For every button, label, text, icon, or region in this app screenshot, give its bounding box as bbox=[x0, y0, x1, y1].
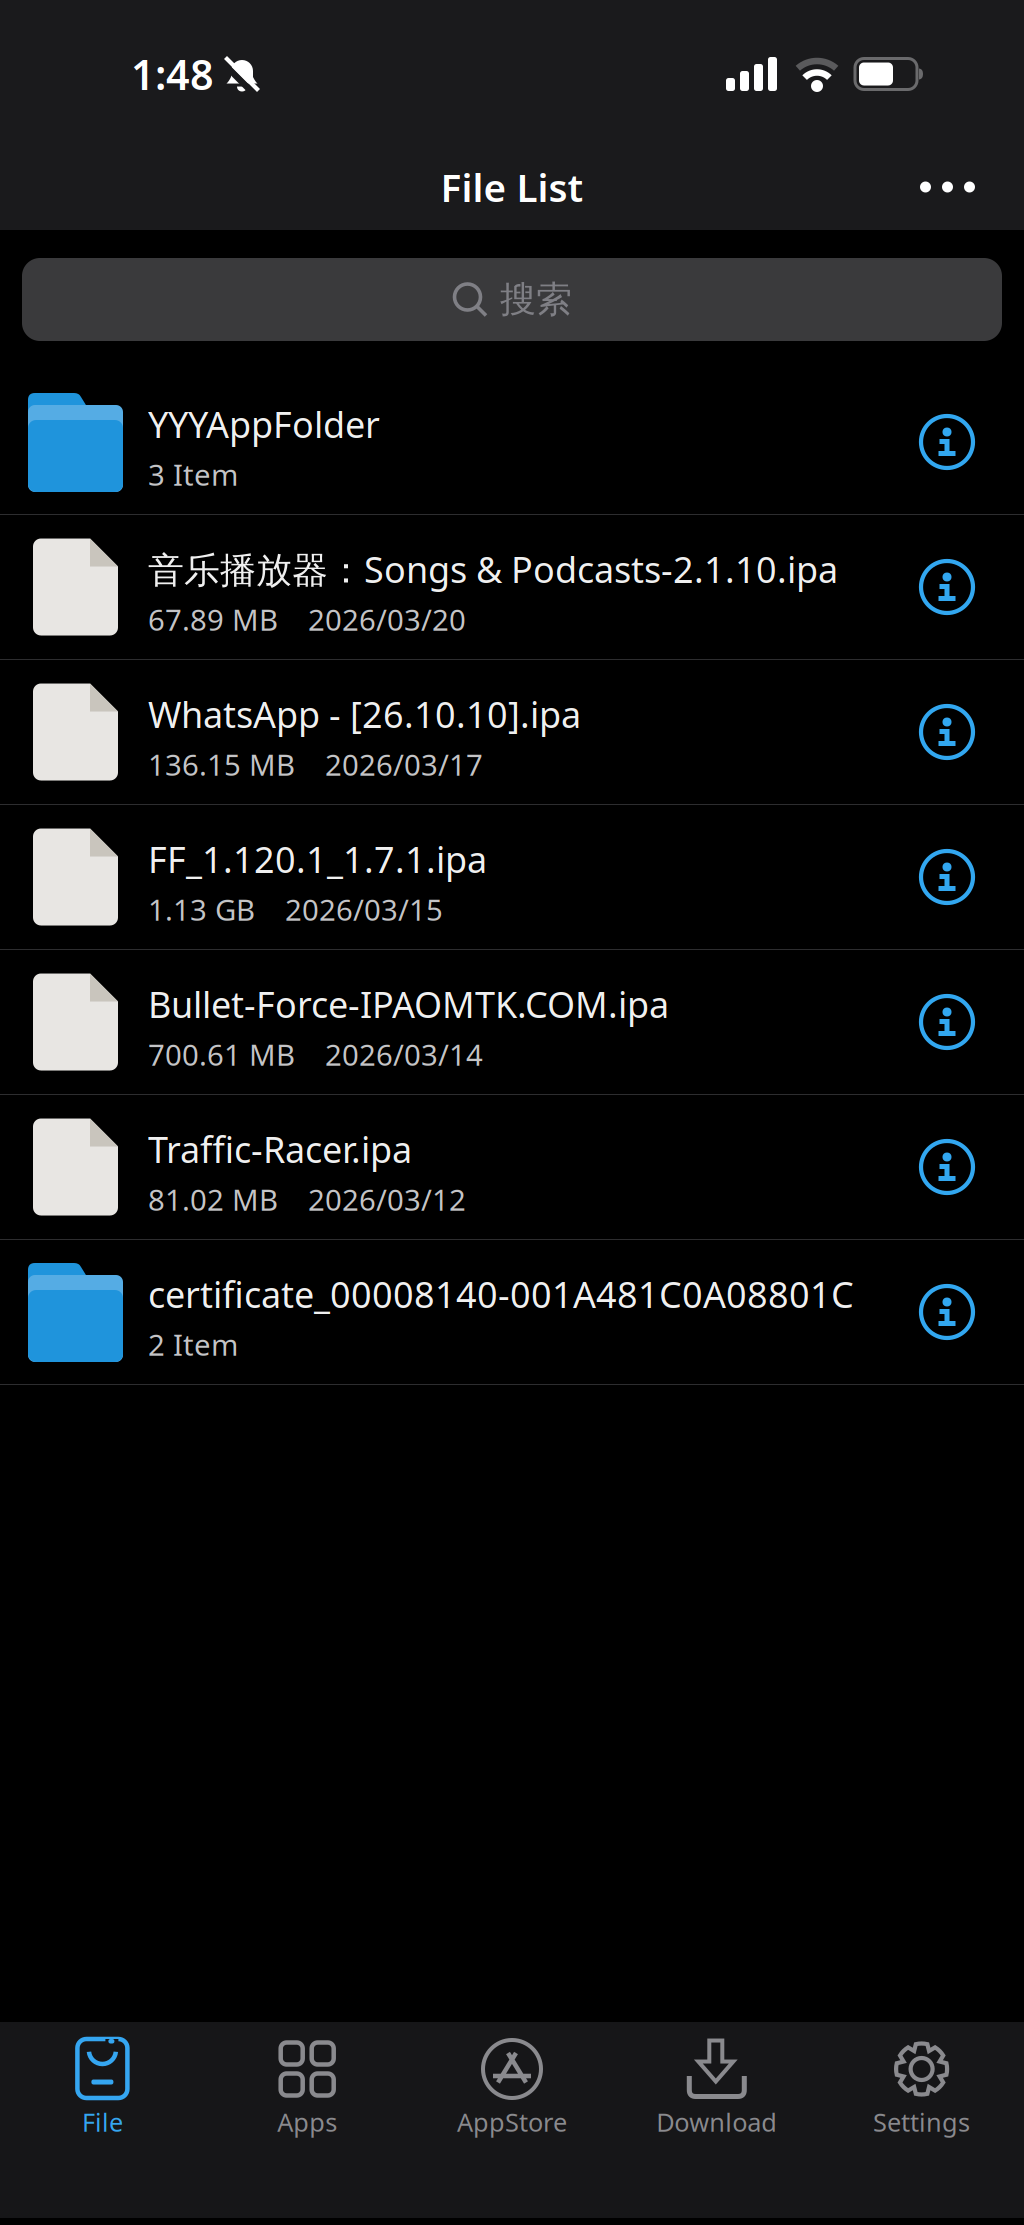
staticText: 2026/03/17 bbox=[325, 745, 483, 784]
button[interactable]: AppStore bbox=[410, 2039, 614, 2139]
staticText: 2026/03/14 bbox=[325, 1035, 483, 1074]
button[interactable]: Download bbox=[614, 2039, 819, 2139]
staticText: certificate_00008140-001A481C0A08801C bbox=[148, 1270, 854, 1318]
button[interactable]: Info bbox=[921, 1286, 973, 1338]
button[interactable]: Info bbox=[921, 996, 973, 1048]
button[interactable]: Apps bbox=[205, 2039, 410, 2139]
button[interactable]: 音乐播放器：Songs & Podcasts-2.1.10.ipa bbox=[0, 515, 1024, 659]
staticText: 2026/03/20 bbox=[308, 600, 466, 639]
button[interactable]: Settings bbox=[819, 2039, 1024, 2139]
staticText: File List bbox=[440, 161, 583, 213]
staticText: 136.15 MB bbox=[148, 745, 295, 784]
button[interactable]: File bbox=[0, 2039, 205, 2139]
button[interactable]: certificate_00008140-001A481C0A08801C bbox=[0, 1240, 1024, 1384]
staticText: WhatsApp - [26.10.10].ipa bbox=[148, 690, 581, 738]
button[interactable]: Bullet-Force-IPAOMTK.COM.ipa bbox=[0, 950, 1024, 1094]
button[interactable]: Info bbox=[921, 851, 973, 903]
staticText: Bullet-Force-IPAOMTK.COM.ipa bbox=[148, 980, 669, 1028]
staticText: YYYAppFolder bbox=[148, 400, 380, 448]
button[interactable]: Search bbox=[22, 258, 1002, 341]
staticText: Apps bbox=[277, 2105, 337, 2139]
button[interactable]: Info bbox=[921, 706, 973, 758]
button[interactable]: FF_1.120.1_1.7.1.ipa bbox=[0, 805, 1024, 949]
staticText: 67.89 MB bbox=[148, 600, 278, 639]
staticText: 1:48 bbox=[131, 47, 214, 101]
button[interactable]: Traffic-Racer.ipa bbox=[0, 1095, 1024, 1239]
button[interactable]: YYYAppFolder bbox=[0, 370, 1024, 514]
staticText: 2026/03/12 bbox=[308, 1180, 466, 1219]
staticText: 音乐播放器：Songs & Podcasts-2.1.10.ipa bbox=[148, 545, 838, 593]
staticText: File bbox=[82, 2105, 123, 2139]
staticText: Settings bbox=[873, 2105, 970, 2139]
staticText: 2026/03/15 bbox=[285, 890, 443, 929]
button[interactable]: More bbox=[920, 161, 975, 212]
staticText: AppStore bbox=[457, 2105, 567, 2139]
button[interactable]: Info bbox=[921, 416, 973, 468]
button[interactable]: Info bbox=[921, 1141, 973, 1193]
staticText: FF_1.120.1_1.7.1.ipa bbox=[148, 835, 487, 883]
staticText: Download bbox=[656, 2105, 777, 2139]
staticText: 3 Item bbox=[148, 455, 238, 494]
button[interactable]: Info bbox=[921, 561, 973, 613]
staticText: Traffic-Racer.ipa bbox=[148, 1125, 412, 1173]
staticText: 2 Item bbox=[148, 1325, 238, 1364]
staticText: 81.02 MB bbox=[148, 1180, 278, 1219]
staticText: 700.61 MB bbox=[148, 1035, 295, 1074]
staticText: 1.13 GB bbox=[148, 890, 255, 929]
staticText: 搜索 bbox=[500, 277, 572, 322]
button[interactable]: WhatsApp - [26.10.10].ipa bbox=[0, 660, 1024, 804]
